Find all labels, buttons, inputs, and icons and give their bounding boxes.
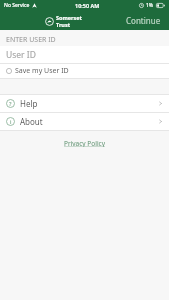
staticText: ENTER USER ID (6, 35, 56, 45)
staticText: ? (9, 100, 12, 107)
staticText: 10:50 AM (75, 2, 100, 9)
staticText: Privacy Policy (64, 139, 106, 147)
button[interactable]: i (0, 113, 169, 130)
staticText: Continue (126, 15, 161, 26)
button[interactable]: Save my User ID (0, 64, 169, 78)
staticText: Help (20, 98, 38, 109)
staticText: Somerset (56, 14, 83, 21)
staticText: Trust (56, 21, 71, 28)
button[interactable]: Privacy Policy (62, 137, 108, 149)
button[interactable]: User ID (0, 46, 169, 63)
staticText: No Service (4, 2, 30, 9)
button[interactable]: ? (0, 95, 169, 112)
other: Somerset Trust logo (45, 14, 83, 28)
staticText: 1% (146, 2, 154, 9)
staticText: i (10, 118, 12, 125)
staticText: Save my User ID (15, 66, 69, 76)
staticText: About (20, 116, 43, 127)
staticText: User ID (6, 49, 36, 61)
button[interactable]: Continue (123, 11, 164, 30)
